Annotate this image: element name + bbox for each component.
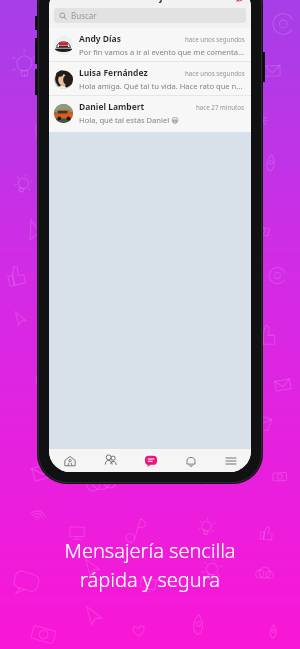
staticText: rápida y segura: [80, 566, 220, 593]
staticText: hace 27 minutos: [196, 103, 245, 111]
staticText: Daniel Lambert: [79, 101, 145, 113]
staticText: Buscar: [71, 10, 97, 21]
staticText: Mensajes: [125, 0, 175, 3]
button[interactable]: Buscar: [54, 8, 246, 23]
staticText: Por fin vamos a ir al evento que me come…: [79, 47, 245, 57]
staticText: Hola, qué tal estás Daniel 😀: [79, 115, 180, 125]
button[interactable]: Inicio: [49, 449, 90, 472]
staticText: hace unos segundos: [185, 69, 245, 77]
button[interactable]: Mensajes: [131, 449, 171, 472]
staticText: Hola amiga. Qué tal tu vida. Hace rato q…: [79, 81, 243, 91]
staticText: Mensajería sencilla: [64, 537, 236, 564]
staticText: Luisa Fernández: [79, 67, 148, 79]
button[interactable]: Daniel Lambert: [49, 96, 251, 129]
button[interactable]: Notificaciones: [171, 449, 211, 472]
staticText: Andy Días: [79, 33, 121, 45]
button[interactable]: Nuevo mensaje: [232, 0, 246, 3]
staticText: hace unos segundos: [185, 35, 245, 43]
button[interactable]: Andy Días: [49, 28, 251, 61]
button[interactable]: Menú: [211, 449, 251, 472]
button[interactable]: Contactos: [90, 449, 131, 472]
button[interactable]: Luisa Fernández: [49, 62, 251, 95]
